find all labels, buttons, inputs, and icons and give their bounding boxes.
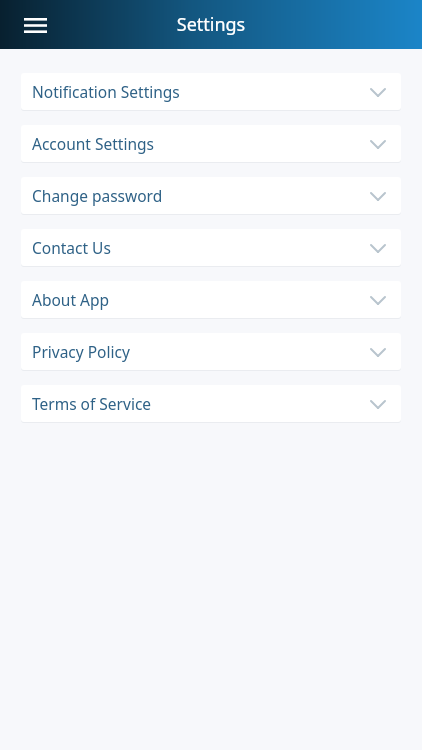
button[interactable]: Account Settings [21, 125, 401, 162]
staticText: Terms of Service [32, 393, 367, 414]
button[interactable]: Privacy Policy [21, 333, 401, 370]
staticText: Privacy Policy [32, 341, 367, 362]
staticText: Notification Settings [32, 81, 367, 102]
button[interactable]: Notification Settings [21, 73, 401, 110]
button[interactable]: Contact Us [21, 229, 401, 266]
button[interactable]: Terms of Service [21, 385, 401, 422]
button[interactable]: About App [21, 281, 401, 318]
staticText: Contact Us [32, 237, 367, 258]
staticText: Account Settings [32, 133, 367, 154]
button[interactable]: Open navigation menu [14, 4, 56, 46]
staticText: About App [32, 289, 367, 310]
staticText: Settings [0, 12, 422, 37]
staticText: Change password [32, 185, 367, 206]
button[interactable]: Change password [21, 177, 401, 214]
